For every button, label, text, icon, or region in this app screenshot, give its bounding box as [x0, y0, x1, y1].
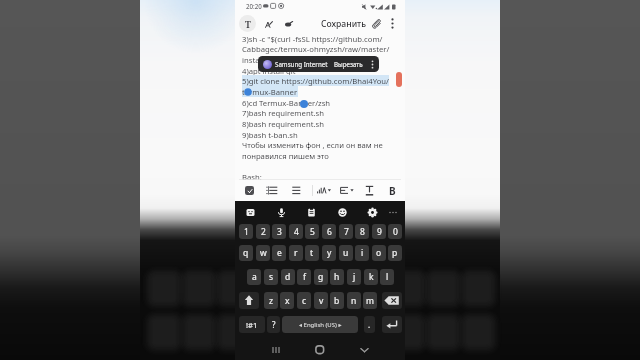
staticText: 7 — [344, 226, 349, 238]
button[interactable]: i — [355, 245, 369, 261]
button[interactable]: 4 — [289, 224, 303, 239]
button[interactable]: d — [281, 269, 295, 285]
staticText: понравился пишем это — [242, 151, 329, 161]
button[interactable]: Attach — [369, 16, 383, 30]
button[interactable]: z — [264, 292, 278, 309]
button[interactable]: 7 — [339, 224, 353, 239]
staticText: v — [319, 295, 324, 307]
button[interactable]: h — [330, 269, 344, 285]
button[interactable]: 5 — [305, 224, 319, 239]
button[interactable]: b — [330, 292, 344, 309]
staticText: Чтобы изменить фон , если он вам не — [242, 140, 383, 150]
staticText: install.sh)" — [242, 55, 280, 65]
button[interactable]: g — [314, 269, 328, 285]
button[interactable]: Bulleted list — [266, 185, 278, 196]
staticText: s — [269, 271, 274, 283]
button[interactable]: ◂ English (US) ▸ — [282, 316, 358, 333]
button[interactable]: Сохранить — [321, 15, 367, 32]
button[interactable]: More keyboard options — [387, 207, 398, 217]
staticText: . — [368, 319, 371, 330]
staticText: !#1 — [246, 320, 258, 330]
button[interactable]: 6 — [322, 224, 336, 239]
button[interactable]: l — [380, 269, 394, 285]
button[interactable]: Text colour — [363, 184, 375, 197]
staticText: 1 — [244, 226, 249, 238]
button[interactable]: 3 — [272, 224, 286, 239]
staticText: ? — [272, 319, 276, 330]
button[interactable]: Voice input — [275, 206, 287, 218]
button[interactable]: Recent apps — [268, 342, 284, 358]
button[interactable]: o — [372, 245, 386, 261]
button[interactable]: Clipboard — [305, 206, 317, 218]
button[interactable]: ? — [267, 316, 280, 333]
button[interactable]: r — [289, 245, 303, 261]
button[interactable]: q — [239, 245, 253, 261]
button[interactable]: k — [364, 269, 378, 285]
button[interactable]: !#1 — [239, 316, 265, 333]
staticText: 3)sh -c "$(curl -fsSL https://github.com… — [242, 34, 383, 44]
staticText: f — [303, 271, 306, 283]
button[interactable]: Checklist — [245, 186, 254, 195]
staticText: ◂ English (US) ▸ — [299, 321, 342, 329]
button[interactable]: Handwriting — [262, 18, 275, 31]
button[interactable]: Keyboard settings — [366, 206, 378, 218]
button[interactable]: Samsung Internet — [258, 56, 379, 72]
button[interactable]: . — [364, 316, 375, 333]
button[interactable]: Backspace — [382, 292, 402, 309]
staticText: d — [285, 271, 291, 283]
button[interactable]: 0 — [388, 224, 402, 239]
button[interactable]: Shift — [239, 292, 259, 309]
staticText: t — [310, 247, 314, 259]
button[interactable]: a — [247, 269, 261, 285]
staticText: p — [392, 247, 398, 259]
staticText: l — [386, 271, 389, 283]
button[interactable]: w — [256, 245, 270, 261]
button[interactable]: e — [272, 245, 286, 261]
button[interactable]: v — [314, 292, 328, 309]
staticText: 8 — [360, 226, 365, 238]
button[interactable]: n — [347, 292, 361, 309]
button[interactable]: Stickers — [244, 206, 256, 218]
staticText: u — [343, 247, 349, 259]
staticText: 7)bash requirement.sh — [242, 108, 324, 118]
staticText: h — [334, 271, 340, 283]
staticText: 20:20 — [246, 2, 262, 10]
button[interactable]: 8 — [355, 224, 369, 239]
staticText: 8)bash requirement.sh — [242, 119, 324, 129]
button[interactable]: Bold — [386, 184, 398, 197]
button[interactable]: Paragraph alignment — [340, 185, 354, 196]
button[interactable]: j — [347, 269, 361, 285]
button[interactable]: Text size — [317, 185, 331, 196]
staticText: a — [252, 271, 257, 283]
staticText: Вырезать — [334, 60, 363, 68]
button[interactable]: c — [297, 292, 311, 309]
staticText: m — [366, 295, 374, 307]
button[interactable]: Text style — [239, 15, 256, 32]
button[interactable]: p — [388, 245, 402, 261]
staticText: Сохранить — [321, 18, 367, 30]
button[interactable]: y — [322, 245, 336, 261]
staticText: Cabbagec/termux-ohmyzsh/raw/master/ — [242, 44, 390, 54]
button[interactable]: m — [363, 292, 377, 309]
staticText: termux-Banner — [242, 87, 298, 97]
staticText: r — [294, 247, 298, 259]
button[interactable]: 2 — [256, 224, 270, 239]
button[interactable]: x — [280, 292, 294, 309]
button[interactable]: Home — [312, 342, 328, 358]
staticText: q — [243, 247, 249, 259]
button[interactable]: t — [305, 245, 319, 261]
button[interactable]: u — [339, 245, 353, 261]
button[interactable]: Hide keyboard — [356, 342, 372, 358]
button[interactable]: 9 — [372, 224, 386, 239]
button[interactable]: Emoji — [336, 206, 348, 218]
staticText: Samsung Internet — [275, 60, 328, 68]
staticText: 5 — [310, 226, 315, 238]
button[interactable]: Enter — [382, 316, 402, 333]
staticText: 4 — [294, 226, 299, 238]
button[interactable]: Unordered list — [289, 185, 301, 196]
button[interactable]: More options — [385, 16, 399, 30]
button[interactable]: 1 — [239, 224, 253, 239]
button[interactable]: f — [297, 269, 311, 285]
button[interactable]: s — [264, 269, 278, 285]
button[interactable]: Drawing tools — [282, 18, 295, 31]
